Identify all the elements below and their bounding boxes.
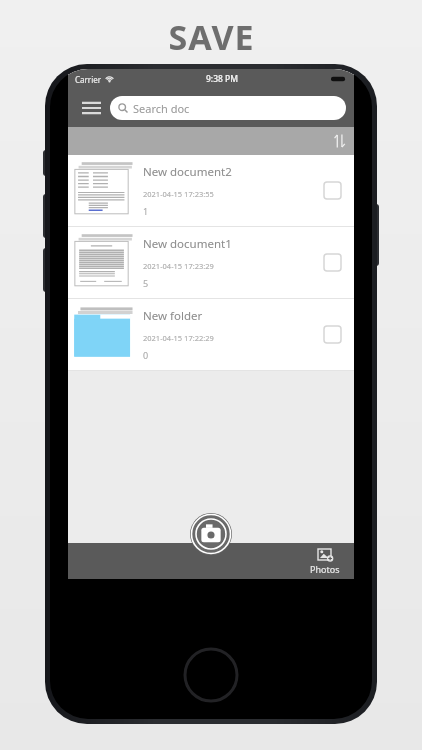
staticText: 0	[143, 349, 149, 361]
staticText: Carrier	[75, 74, 102, 85]
button[interactable]: New folder	[68, 299, 354, 370]
staticText: New document1	[143, 236, 232, 252]
button[interactable]: Camera	[190, 513, 232, 555]
staticText: 9:38 PM	[206, 73, 239, 85]
staticText: 2021-04-15 17:23:29	[143, 261, 214, 271]
staticText: 5	[143, 277, 149, 289]
staticText: New folder	[143, 308, 203, 324]
staticText: 1	[143, 205, 149, 217]
button[interactable]: Photos	[310, 547, 340, 575]
button[interactable]: Select New folder	[324, 326, 341, 343]
staticText: 2021-04-15 17:22:29	[143, 333, 214, 343]
staticText: Search doc	[133, 101, 190, 116]
button[interactable]: Select New document2	[324, 182, 341, 199]
staticText: 2021-04-15 17:23:55	[143, 189, 214, 199]
staticText: Photos	[310, 563, 340, 575]
staticText: SAVE	[168, 14, 255, 60]
button[interactable]: Search doc	[110, 96, 346, 120]
button[interactable]: New document2	[68, 155, 354, 226]
button[interactable]: New document1	[68, 227, 354, 298]
button[interactable]: Menu	[76, 93, 106, 123]
staticText: New document2	[143, 164, 232, 180]
button[interactable]: Sort	[326, 127, 354, 155]
button[interactable]: Select New document1	[324, 254, 341, 271]
